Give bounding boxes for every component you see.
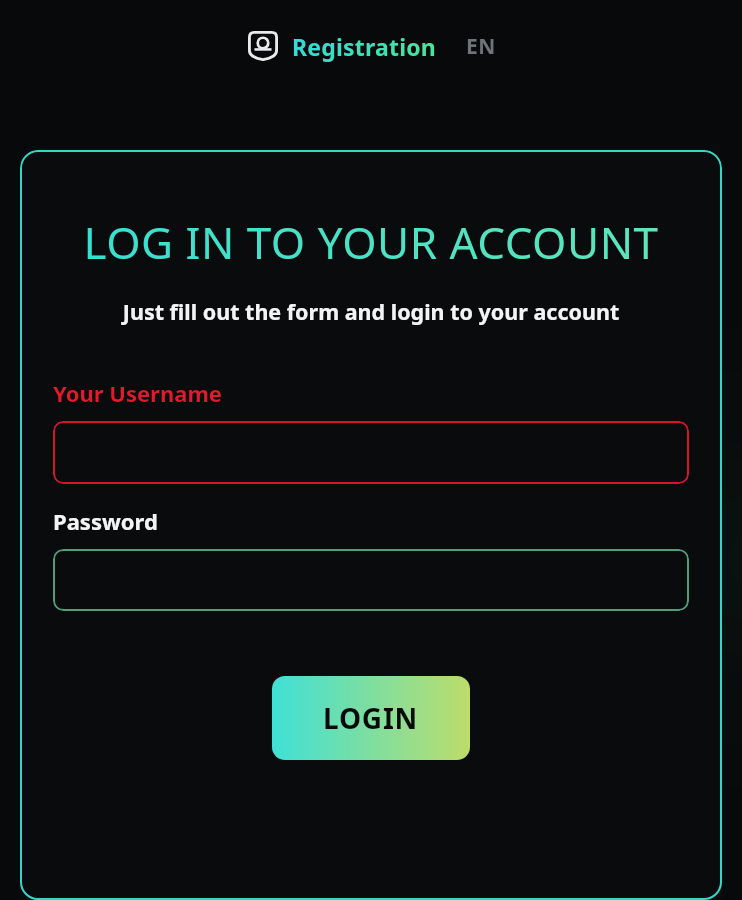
button[interactable]: Password input (53, 549, 689, 611)
button[interactable]: Registration (292, 31, 436, 62)
staticText: Password (53, 506, 689, 536)
staticText: EN (466, 32, 496, 61)
button[interactable]: LOGIN (272, 676, 470, 760)
button[interactable]: Account shield (246, 29, 280, 63)
button[interactable]: Your Username input (53, 421, 689, 484)
button[interactable]: EN (466, 32, 496, 61)
staticText: Your Username (53, 378, 689, 408)
staticText: LOGIN (323, 699, 419, 737)
staticText: LOG IN TO YOUR ACCOUNT (53, 212, 689, 272)
staticText: Registration (292, 31, 436, 62)
staticText: Just fill out the form and login to your… (53, 297, 689, 326)
